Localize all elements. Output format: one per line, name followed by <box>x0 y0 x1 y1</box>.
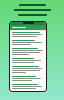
button[interactable] <box>10 75 46 83</box>
button[interactable] <box>10 47 46 57</box>
button[interactable] <box>10 57 46 65</box>
button[interactable] <box>10 65 46 75</box>
button[interactable]: More options <box>42 27 44 29</box>
button[interactable]: More options <box>10 25 46 30</box>
button[interactable] <box>10 39 46 47</box>
button[interactable] <box>10 31 46 39</box>
button[interactable] <box>10 83 46 91</box>
